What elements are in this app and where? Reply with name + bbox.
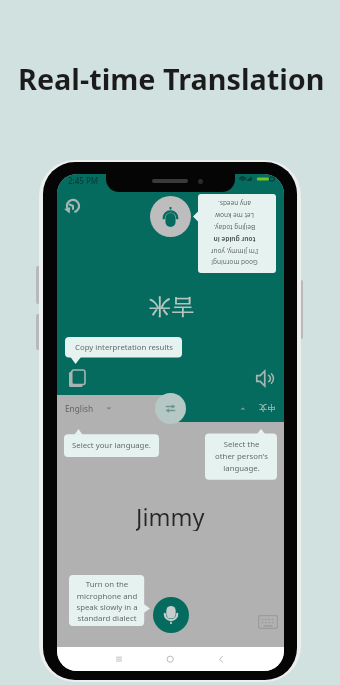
staticText: Select the other person's language. [215, 439, 268, 473]
staticText: Copy interpretation results [75, 342, 173, 353]
button[interactable]: Start microphone [153, 597, 189, 633]
button[interactable]: Swap languages [155, 393, 186, 424]
staticText: 2:45 PM [68, 175, 99, 186]
button[interactable]: 中文 [253, 399, 279, 417]
button[interactable]: English [65, 399, 115, 417]
button[interactable]: Translation history [65, 198, 81, 214]
button[interactable]: Microphone [150, 196, 191, 237]
button[interactable]: Copy [69, 370, 85, 387]
staticText: 吉米 [148, 292, 194, 320]
staticText: English [65, 403, 94, 414]
staticText: Select your language. [72, 440, 151, 451]
button[interactable]: Back [211, 649, 231, 669]
button[interactable]: Keyboard [258, 615, 278, 629]
button[interactable]: Play audio [256, 370, 275, 387]
button[interactable]: Recent apps [109, 649, 129, 669]
staticText: Good morning! I'm Jimmy, your tour guide… [199, 196, 270, 267]
staticText: Jimmy [136, 501, 205, 531]
button[interactable]: Home [160, 649, 180, 669]
staticText: Turn on the microphone and speak slowly … [76, 579, 138, 623]
staticText: Real-time Translation [18, 59, 325, 98]
staticText: 中文 [258, 403, 275, 413]
